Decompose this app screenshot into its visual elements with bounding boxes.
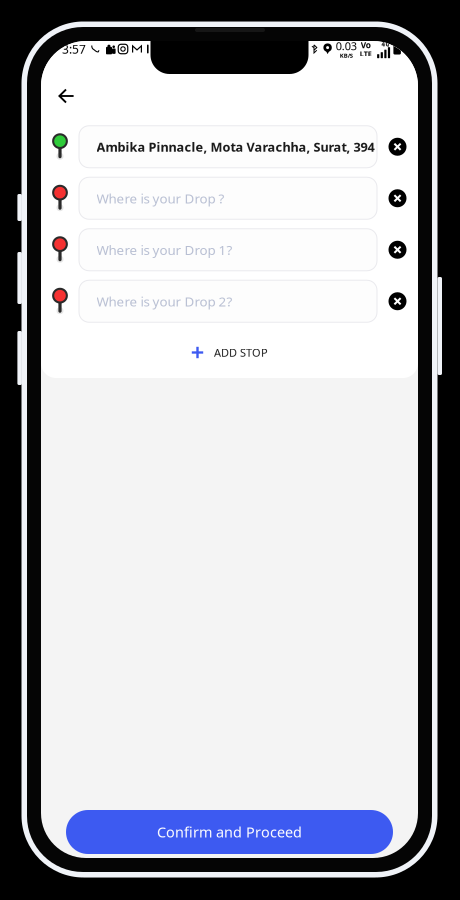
button[interactable]: Where is your Drop 1? [79,229,377,271]
button[interactable]: Clear [377,229,418,271]
staticText: Vo [361,39,371,51]
staticText: 4G [381,40,389,48]
staticText: Where is your Drop 2? [96,292,232,310]
staticText: 0.03 [336,39,357,53]
staticText: Where is your Drop ? [96,189,224,207]
staticText: ADD STOP [214,345,268,360]
button[interactable]: Clear [377,177,418,219]
button[interactable]: Clear [377,126,418,168]
staticText: Ambika Pinnacle, Mota Varachha, Surat, 3… [96,138,374,155]
button[interactable]: Clear [377,280,418,322]
button[interactable]: Confirm and Proceed [66,810,393,854]
button[interactable]: Ambika Pinnacle, Mota Varachha, Surat, 3… [79,126,377,168]
button[interactable]: Where is your Drop ? [79,177,377,219]
staticText: 3:57 [62,41,86,57]
staticText: Confirm and Proceed [157,822,302,842]
button[interactable]: Where is your Drop 2? [79,280,377,322]
button[interactable]: ADD STOP [41,327,418,378]
staticText: Where is your Drop 1? [96,241,232,259]
button[interactable]: Back [48,77,84,114]
staticText: LTE [360,49,372,58]
staticText: KB/S [340,51,353,59]
